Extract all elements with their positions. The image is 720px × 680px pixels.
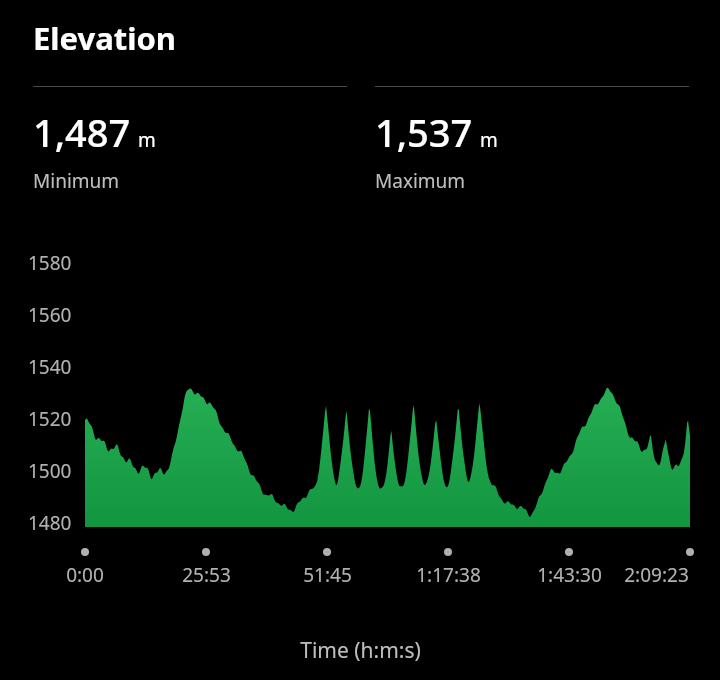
staticText: 25:53 — [182, 562, 231, 588]
staticText: m — [138, 127, 156, 153]
staticText: Time (h:m:s) — [300, 636, 421, 665]
staticText: Minimum — [33, 168, 120, 194]
staticText: 1560 — [28, 302, 72, 328]
staticText: 2:09:23 — [624, 562, 689, 588]
staticText: 1580 — [28, 250, 72, 276]
staticText: m — [480, 127, 498, 153]
staticText: 1500 — [28, 458, 72, 484]
button[interactable]: Elevation — [33, 17, 177, 59]
staticText: 1540 — [28, 354, 72, 380]
staticText: 0:00 — [66, 562, 104, 588]
staticText: 1520 — [28, 406, 72, 432]
staticText: 1,537 — [375, 106, 473, 158]
staticText: 1:17:38 — [416, 562, 481, 588]
staticText: Maximum — [375, 168, 466, 194]
staticText: 51:45 — [303, 562, 352, 588]
button[interactable]: Minimum 1,487 m — [33, 106, 353, 194]
staticText: 1,487 — [33, 106, 131, 158]
button[interactable]: Maximum 1,537 m — [375, 106, 695, 194]
staticText: 1:43:30 — [537, 562, 602, 588]
staticText: 1480 — [28, 510, 72, 536]
